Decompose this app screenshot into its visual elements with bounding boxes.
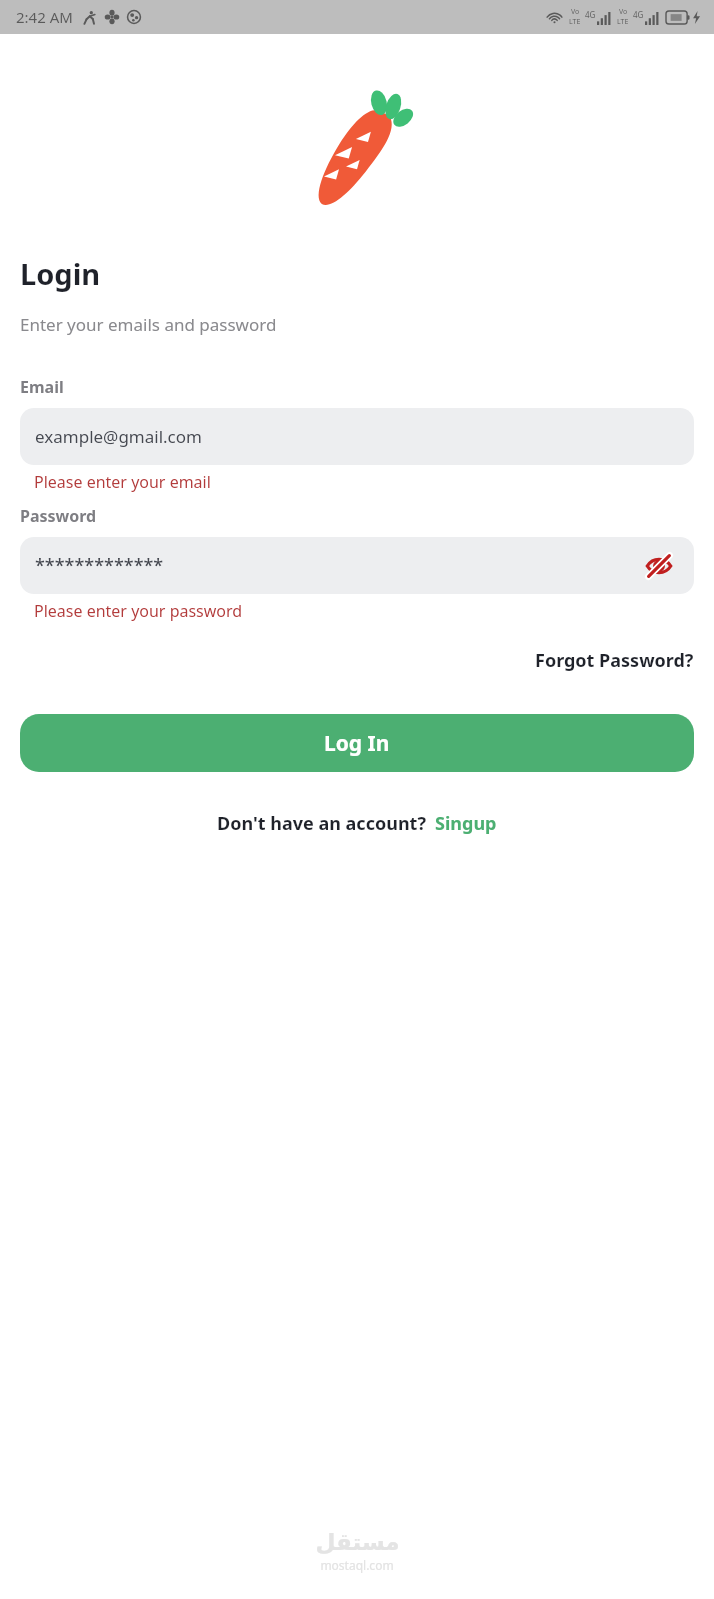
staticText: مستقل [315,1529,400,1556]
staticText: Vo [619,7,628,17]
staticText: LTE [617,17,629,27]
staticText: Email [20,376,64,398]
staticText: 4G [585,9,596,20]
staticText: Vo [571,7,580,17]
staticText: 2:42 AM [16,7,73,27]
staticText: ************* [35,553,164,578]
staticText: Please enter your password [34,600,243,622]
button[interactable]: example@gmail.com [20,408,694,465]
staticText: LTE [569,17,581,27]
staticText: 4G [633,9,644,20]
button[interactable]: ************* [20,537,694,594]
button[interactable]: Forgot Password? [535,644,694,677]
staticText: example@gmail.com [35,425,202,448]
staticText: Login [20,254,101,293]
staticText: mostaql.com [320,1557,394,1573]
button[interactable]: Log In [20,714,694,772]
staticText: Log In [324,729,390,758]
button[interactable]: Singup [435,808,497,839]
button[interactable]: Toggle password visibility [639,546,679,586]
staticText: Don't have an account? [217,811,426,836]
staticText: Please enter your email [34,471,211,493]
staticText: Password [20,505,97,527]
staticText: Enter your emails and password [20,313,277,336]
